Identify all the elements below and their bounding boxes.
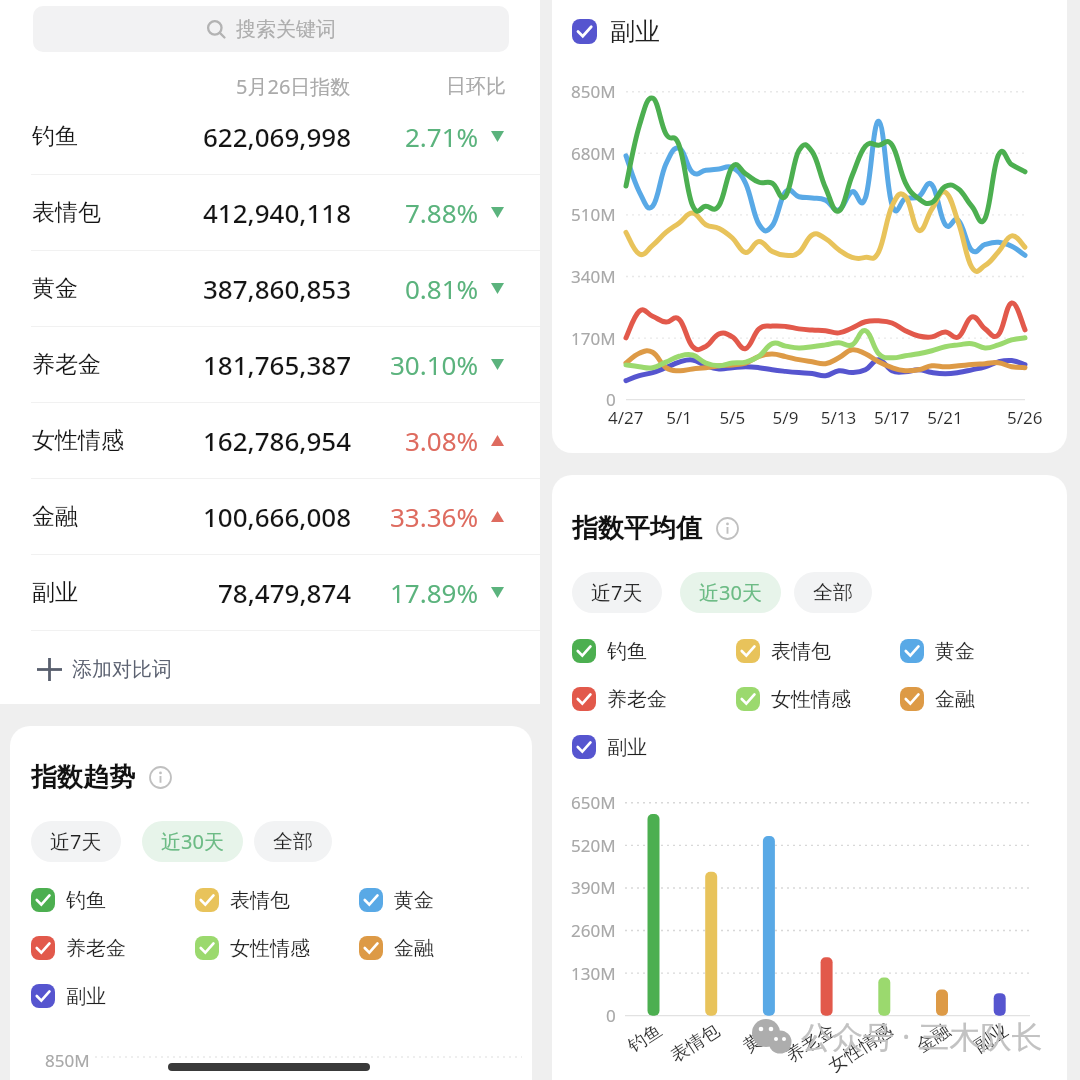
- button[interactable]: 养老金: [0, 327, 540, 402]
- staticText: 日环比: [446, 74, 506, 99]
- button[interactable]: 养老金: [31, 924, 195, 972]
- button[interactable]: 全部: [254, 821, 332, 862]
- staticText: 412,940,118: [203, 195, 352, 230]
- staticText: 850M: [45, 1049, 90, 1072]
- button[interactable]: 表情包: [195, 876, 359, 924]
- button[interactable]: 女性情感: [195, 924, 359, 972]
- staticText: 副业: [610, 16, 660, 47]
- staticText: 全部: [813, 580, 853, 605]
- button[interactable]: 钓鱼: [0, 99, 540, 174]
- staticText: 17.89%: [390, 575, 479, 610]
- button[interactable]: 全部: [794, 572, 872, 613]
- button[interactable]: 黄金: [0, 251, 540, 326]
- staticText: 78,479,874: [218, 575, 352, 610]
- button[interactable]: 黄金: [359, 876, 523, 924]
- staticText: 指数平均值: [572, 512, 702, 545]
- staticText: 钓鱼: [66, 888, 106, 913]
- staticText: 指数趋势: [31, 761, 135, 794]
- staticText: 女性情感: [771, 687, 851, 712]
- staticText: 副业: [607, 735, 647, 760]
- button[interactable]: 女性情感: [0, 403, 540, 478]
- button[interactable]: 搜索关键词: [33, 6, 509, 52]
- staticText: 公众号 · 三木队长: [801, 1015, 1043, 1057]
- button[interactable]: 金融: [900, 675, 1064, 723]
- button[interactable]: 副业: [572, 16, 660, 47]
- staticText: 金融: [394, 936, 434, 961]
- staticText: 7.88%: [405, 195, 479, 230]
- button[interactable]: 金融: [359, 924, 523, 972]
- staticText: 养老金: [66, 936, 126, 961]
- staticText: 表情包: [32, 198, 101, 227]
- button[interactable]: 近7天: [31, 821, 121, 862]
- staticText: 387,860,853: [203, 271, 352, 306]
- staticText: 0.81%: [405, 271, 479, 306]
- staticText: 181,765,387: [203, 347, 352, 382]
- staticText: 添加对比词: [72, 657, 172, 682]
- staticText: 钓鱼: [607, 639, 647, 664]
- staticText: 养老金: [607, 687, 667, 712]
- button[interactable]: 副业: [572, 723, 736, 771]
- staticText: 近7天: [50, 828, 102, 855]
- staticText: 黄金: [32, 274, 78, 303]
- staticText: 养老金: [32, 350, 101, 379]
- button[interactable]: 添加对比词: [0, 631, 540, 707]
- staticText: 33.36%: [390, 499, 479, 534]
- staticText: 钓鱼: [32, 122, 78, 151]
- staticText: 5月26日指数: [236, 73, 351, 100]
- staticText: 100,666,008: [203, 499, 352, 534]
- button[interactable]: 表情包: [736, 627, 900, 675]
- button[interactable]: 表情包: [0, 175, 540, 250]
- staticText: 表情包: [771, 639, 831, 664]
- staticText: 162,786,954: [203, 423, 352, 458]
- staticText: 金融: [32, 502, 78, 531]
- button[interactable]: 近7天: [572, 572, 662, 613]
- staticText: 副业: [66, 984, 106, 1009]
- button[interactable]: 女性情感: [736, 675, 900, 723]
- staticText: 黄金: [935, 639, 975, 664]
- staticText: 女性情感: [230, 936, 310, 961]
- button[interactable]: 近30天: [680, 572, 781, 613]
- staticText: 全部: [273, 829, 313, 854]
- button[interactable]: 近30天: [142, 821, 243, 862]
- button[interactable]: 养老金: [572, 675, 736, 723]
- staticText: 金融: [935, 687, 975, 712]
- button[interactable]: 钓鱼: [31, 876, 195, 924]
- staticText: 2.71%: [405, 119, 479, 154]
- staticText: 622,069,998: [203, 119, 352, 154]
- button[interactable]: 黄金: [900, 627, 1064, 675]
- staticText: 近30天: [699, 579, 762, 606]
- staticText: 近30天: [161, 828, 224, 855]
- button[interactable]: 副业: [31, 972, 195, 1020]
- staticText: 副业: [32, 578, 78, 607]
- staticText: 黄金: [394, 888, 434, 913]
- staticText: 近7天: [591, 579, 643, 606]
- staticText: 3.08%: [405, 423, 479, 458]
- button[interactable]: 副业: [0, 555, 540, 630]
- button[interactable]: 金融: [0, 479, 540, 554]
- staticText: 女性情感: [32, 426, 124, 455]
- staticText: 30.10%: [390, 347, 479, 382]
- staticText: 表情包: [230, 888, 290, 913]
- button[interactable]: 钓鱼: [572, 627, 736, 675]
- staticText: 搜索关键词: [236, 17, 336, 42]
